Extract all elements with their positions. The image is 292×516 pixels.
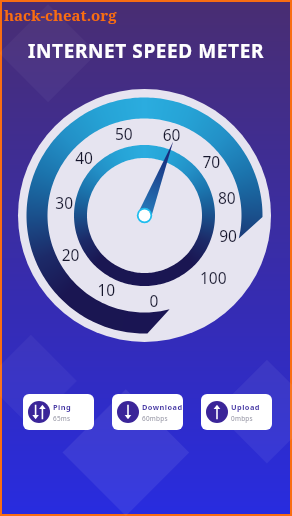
- button[interactable]: Upload: [201, 394, 272, 430]
- staticText: INTERNET SPEED METER: [2, 38, 290, 64]
- staticText: 65ms: [53, 414, 71, 423]
- button[interactable]: Ping: [23, 394, 94, 430]
- other: Ping: [28, 401, 50, 423]
- button[interactable]: Download: [112, 394, 183, 430]
- staticText: 0mbps: [231, 414, 253, 423]
- staticText: Ping: [53, 402, 72, 412]
- staticText: Upload: [231, 402, 260, 412]
- other: Upload: [206, 401, 228, 423]
- staticText: Download: [142, 402, 183, 412]
- other: Download: [117, 401, 139, 423]
- staticText: 60mbps: [142, 414, 168, 423]
- staticText: hack-cheat.org: [4, 5, 117, 25]
